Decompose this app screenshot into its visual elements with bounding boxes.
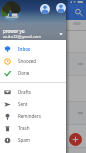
button[interactable]: Snoozed [0, 55, 66, 67]
button[interactable]: Expand account list [58, 31, 64, 37]
staticText: Sent [18, 101, 28, 107]
staticText: Trash [18, 125, 30, 131]
staticText: Snoozed [18, 58, 37, 64]
button[interactable]: Account photo [1, 1, 21, 21]
staticText: Done [18, 70, 30, 76]
button[interactable] [0, 53, 86, 75]
button[interactable]: Spam [0, 134, 66, 146]
staticText: prowor yu [3, 28, 25, 34]
button[interactable] [0, 76, 86, 101]
button[interactable]: Sent [0, 98, 66, 110]
staticText: Drafts [18, 89, 31, 95]
button[interactable] [0, 125, 86, 147]
staticText: Inbox [18, 46, 31, 52]
staticText: Reminders [18, 113, 41, 119]
button[interactable]: Done [0, 67, 66, 79]
button[interactable] [0, 148, 86, 153]
button[interactable] [0, 102, 86, 124]
button[interactable] [0, 31, 86, 52]
button[interactable]: Compose [69, 133, 82, 146]
staticText: Spam [18, 137, 30, 143]
button[interactable]: Inbox [0, 43, 66, 55]
button[interactable]: Reminders [0, 110, 66, 122]
button[interactable]: Search [74, 8, 83, 17]
button[interactable]: Account 3 [56, 3, 66, 13]
button[interactable]: Account 2 [40, 4, 50, 14]
staticText: wuku22@gmail.com [3, 34, 42, 39]
button[interactable]: Drafts [0, 86, 66, 98]
button[interactable]: Trash [0, 122, 66, 134]
